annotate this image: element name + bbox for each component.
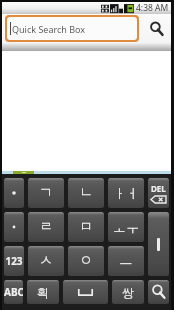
- button[interactable]: [4, 178, 24, 208]
- staticText: ABC: [4, 285, 23, 299]
- button[interactable]: Search: [144, 16, 170, 42]
- staticText: ㅁ: [79, 218, 93, 236]
- staticText: 획: [37, 285, 49, 300]
- button[interactable]: ㅗㅜ: [108, 212, 144, 242]
- button[interactable]: [63, 280, 108, 304]
- staticText: 4:38 AM: [136, 2, 169, 14]
- button[interactable]: ㅏㅓ: [108, 178, 144, 208]
- button[interactable]: [148, 212, 169, 276]
- staticText: ㄹ: [39, 218, 53, 236]
- other: Search: [151, 284, 167, 300]
- staticText: ㄱ: [39, 184, 53, 202]
- staticText: ㄴ: [79, 184, 93, 202]
- button[interactable]: 쌍: [112, 280, 144, 304]
- staticText: ㅏㅓ: [113, 185, 139, 201]
- staticText: Quick Search Box: [12, 23, 86, 35]
- staticText: ㅡ: [119, 252, 133, 270]
- staticText: DEL: [151, 183, 166, 194]
- button[interactable]: ㄱ: [28, 178, 64, 208]
- button[interactable]: 123: [4, 246, 24, 276]
- staticText: 쌍: [122, 285, 134, 300]
- staticText: ㅗㅜ: [113, 219, 139, 235]
- staticText: 123: [5, 254, 23, 268]
- button[interactable]: Search: [148, 280, 169, 304]
- button[interactable]: Quick Search Box: [7, 17, 137, 40]
- button[interactable]: DEL: [148, 178, 169, 208]
- button[interactable]: ㅅ: [28, 246, 64, 276]
- button[interactable]: ㅇ: [68, 246, 104, 276]
- staticText: ㅇ: [79, 252, 93, 270]
- button[interactable]: ABC: [4, 280, 23, 304]
- button[interactable]: ㅡ: [108, 246, 144, 276]
- button[interactable]: ㄹ: [28, 212, 64, 242]
- button[interactable]: 획: [27, 280, 59, 304]
- button[interactable]: ㅁ: [68, 212, 104, 242]
- button[interactable]: [4, 212, 24, 242]
- button[interactable]: ㄴ: [68, 178, 104, 208]
- staticText: ㅅ: [39, 252, 53, 270]
